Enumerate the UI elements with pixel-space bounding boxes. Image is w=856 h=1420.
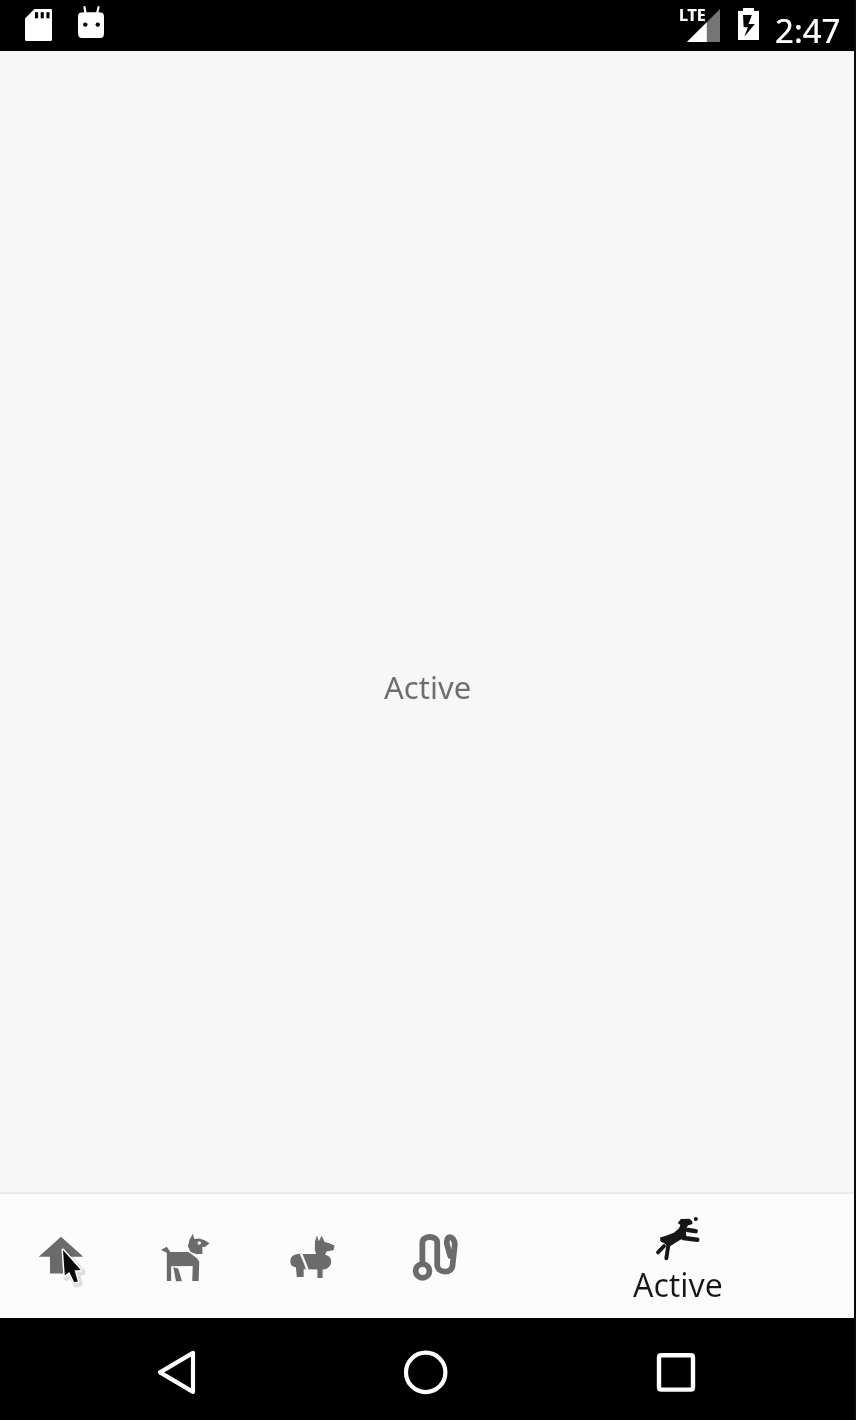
button[interactable]: Walks — [372, 1192, 496, 1318]
button[interactable]: Navigation — [0, 1318, 856, 1420]
staticText: LTE — [679, 4, 706, 26]
staticText: Active — [633, 1263, 723, 1307]
button[interactable]: My dogs — [124, 1192, 248, 1318]
staticText: 2:47 — [775, 8, 841, 53]
staticText: Active — [384, 666, 472, 708]
button[interactable]: Breeds — [248, 1192, 372, 1318]
button[interactable]: Active — [496, 1192, 856, 1318]
button[interactable]: Home — [0, 1192, 124, 1318]
